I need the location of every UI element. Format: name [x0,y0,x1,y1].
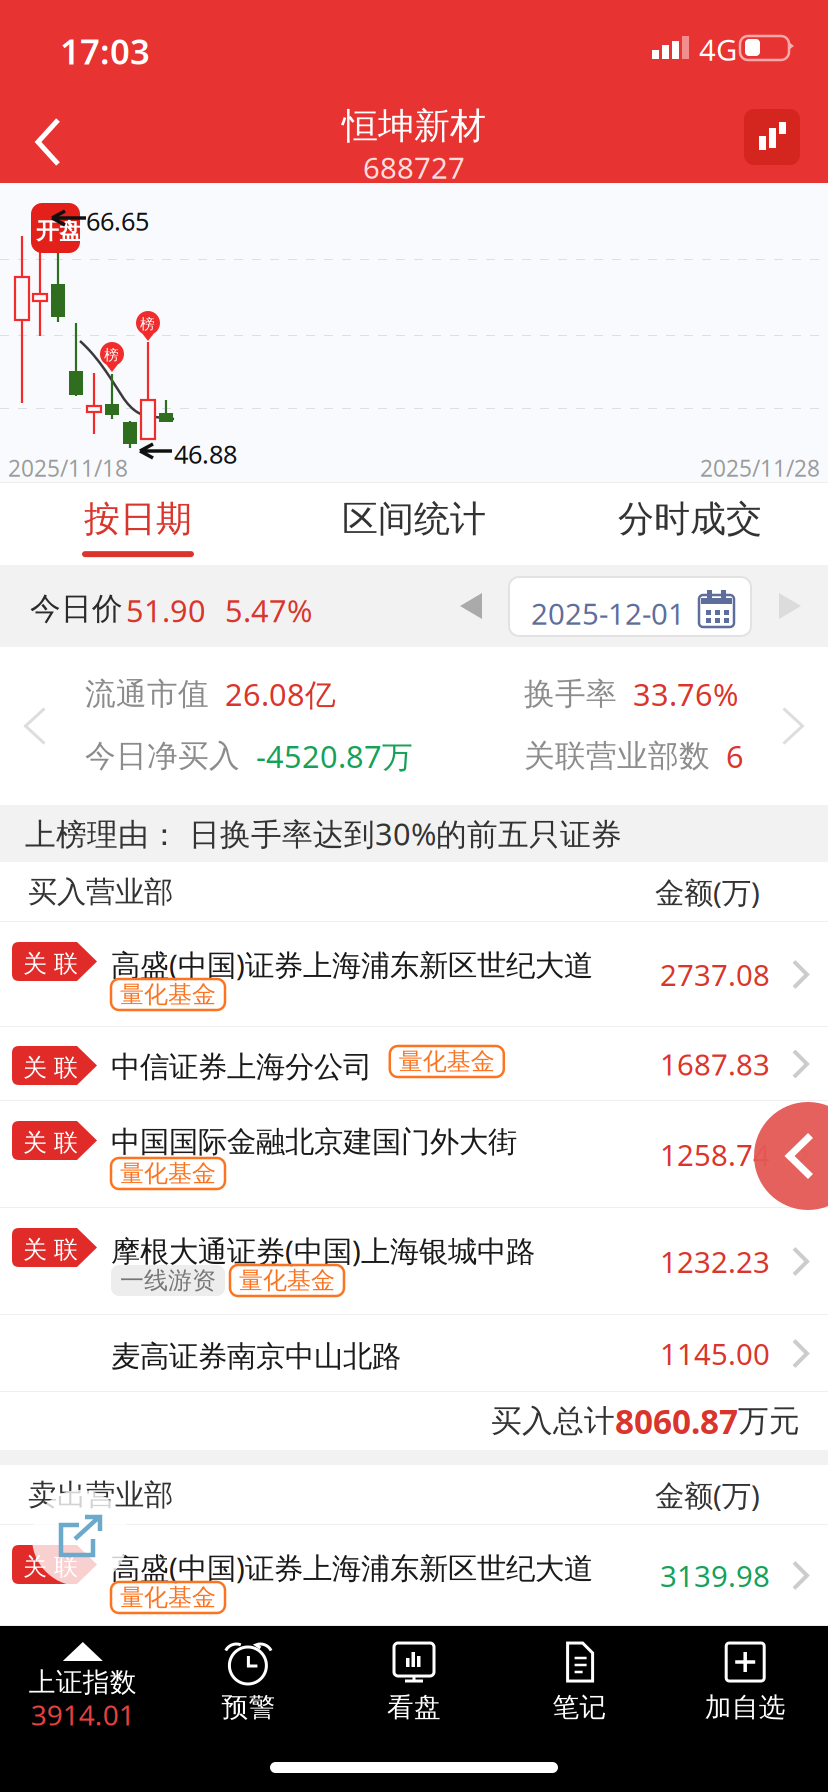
staticText: 关 联 [23,1235,78,1264]
staticText: 高盛(中国)证券上海浦东新区世纪大道 [111,1548,593,1587]
staticText: 换手率 [524,675,617,713]
button[interactable]: 看盘 [331,1634,497,1734]
staticText: 量化基金 [120,1159,216,1188]
staticText: 3914.01 [31,1696,135,1733]
staticText: 2025/11/18 [8,453,128,483]
staticText: 中信证券上海分公司 [111,1049,372,1085]
staticText: 量化基金 [399,1047,495,1076]
staticText: -4520.87万 [256,736,413,776]
staticText: 今日价 [30,590,123,628]
staticText: 量化基金 [120,1583,216,1612]
button[interactable]: 上证指数 [0,1634,166,1734]
staticText: 笔记 [553,1691,607,1724]
staticText: 4G [699,30,737,69]
staticText: 2025/11/28 [700,453,820,483]
staticText: 开盘 [36,217,82,245]
staticText: 6 [726,736,744,776]
staticText: 量化基金 [239,1266,335,1295]
staticText: 区间统计 [342,497,486,541]
staticText: 关 联 [23,949,78,978]
staticText: 摩根大通证券(中国)上海银城中路 [111,1231,535,1270]
staticText: 33.76% [633,674,738,714]
button[interactable]: 加自选 [662,1634,828,1734]
staticText: 按日期 [84,497,192,541]
staticText: 关联营业部数 [524,737,710,775]
button[interactable]: Next day [759,575,821,637]
button[interactable]: 关 联 [0,1525,828,1626]
staticText: 3139.98 [660,1556,770,1595]
button[interactable]: 预警 [166,1634,331,1734]
button[interactable]: Collapse [754,1102,828,1210]
staticText: 1232.23 [660,1242,770,1281]
staticText: 一线游资 [120,1266,216,1295]
button[interactable]: 笔记 [497,1634,662,1734]
staticText: 17:03 [60,28,150,74]
staticText: 万元 [738,1402,800,1440]
staticText: 量化基金 [120,980,216,1009]
staticText: 买入总计 [491,1402,615,1440]
staticText: 分时成交 [618,497,762,541]
staticText: 8060.87 [615,1399,738,1443]
staticText: 上证指数 [29,1666,137,1699]
button[interactable]: 麦高证券南京中山北路 [0,1315,828,1392]
staticText: 买入营业部 [28,874,173,910]
staticText: 关 联 [23,1053,78,1082]
button[interactable]: 关 联 [0,1027,828,1101]
staticText: 关 联 [23,1128,78,1157]
button[interactable]: 关 联 [0,922,828,1027]
button[interactable]: Previous day [440,575,502,637]
button[interactable]: 关 联 [0,1101,828,1208]
button[interactable]: 关 联 [0,1208,828,1315]
staticText: 26.08亿 [225,674,336,714]
staticText: 1687.83 [660,1044,770,1083]
staticText: 榜 [140,315,155,333]
staticText: 关 联 [23,1552,78,1581]
staticText: 51.90 [126,590,206,631]
staticText: 麦高证券南京中山北路 [111,1338,401,1374]
staticText: 中国国际金融北京建国门外大街 [111,1124,517,1160]
staticText: 688727 [363,148,465,187]
button[interactable]: 2025-12-01 [509,577,751,636]
staticText: 2025-12-01 [531,594,685,633]
staticText: 5.47% [225,590,312,631]
staticText: 看盘 [387,1691,441,1724]
button[interactable]: Share [32,1490,128,1586]
button[interactable]: 按日期 [0,483,276,565]
staticText: 上榜理由： 日换手率达到30%的前五只证券 [25,813,622,854]
staticText: 46.88 [174,437,237,471]
staticText: 预警 [221,1691,275,1724]
staticText: 66.65 [86,204,149,238]
staticText: 金额(万) [655,1475,760,1514]
staticText: 2737.08 [660,955,770,994]
staticText: 恒坤新材 [342,104,486,148]
button[interactable]: 区间统计 [276,483,552,565]
button[interactable]: 分时成交 [552,483,828,565]
button[interactable]: K-line chart [744,109,800,165]
staticText: 卖出营业部 [28,1477,173,1513]
staticText: 加自选 [705,1691,786,1724]
staticText: 榜 [104,346,119,364]
staticText: 1145.00 [660,1334,770,1373]
staticText: 高盛(中国)证券上海浦东新区世纪大道 [111,945,593,984]
staticText: 今日净买入 [85,737,240,775]
button[interactable]: Back [10,98,90,186]
staticText: 金额(万) [655,872,760,911]
staticText: 流通市值 [85,675,209,713]
staticText: 1258.74 [660,1135,770,1174]
